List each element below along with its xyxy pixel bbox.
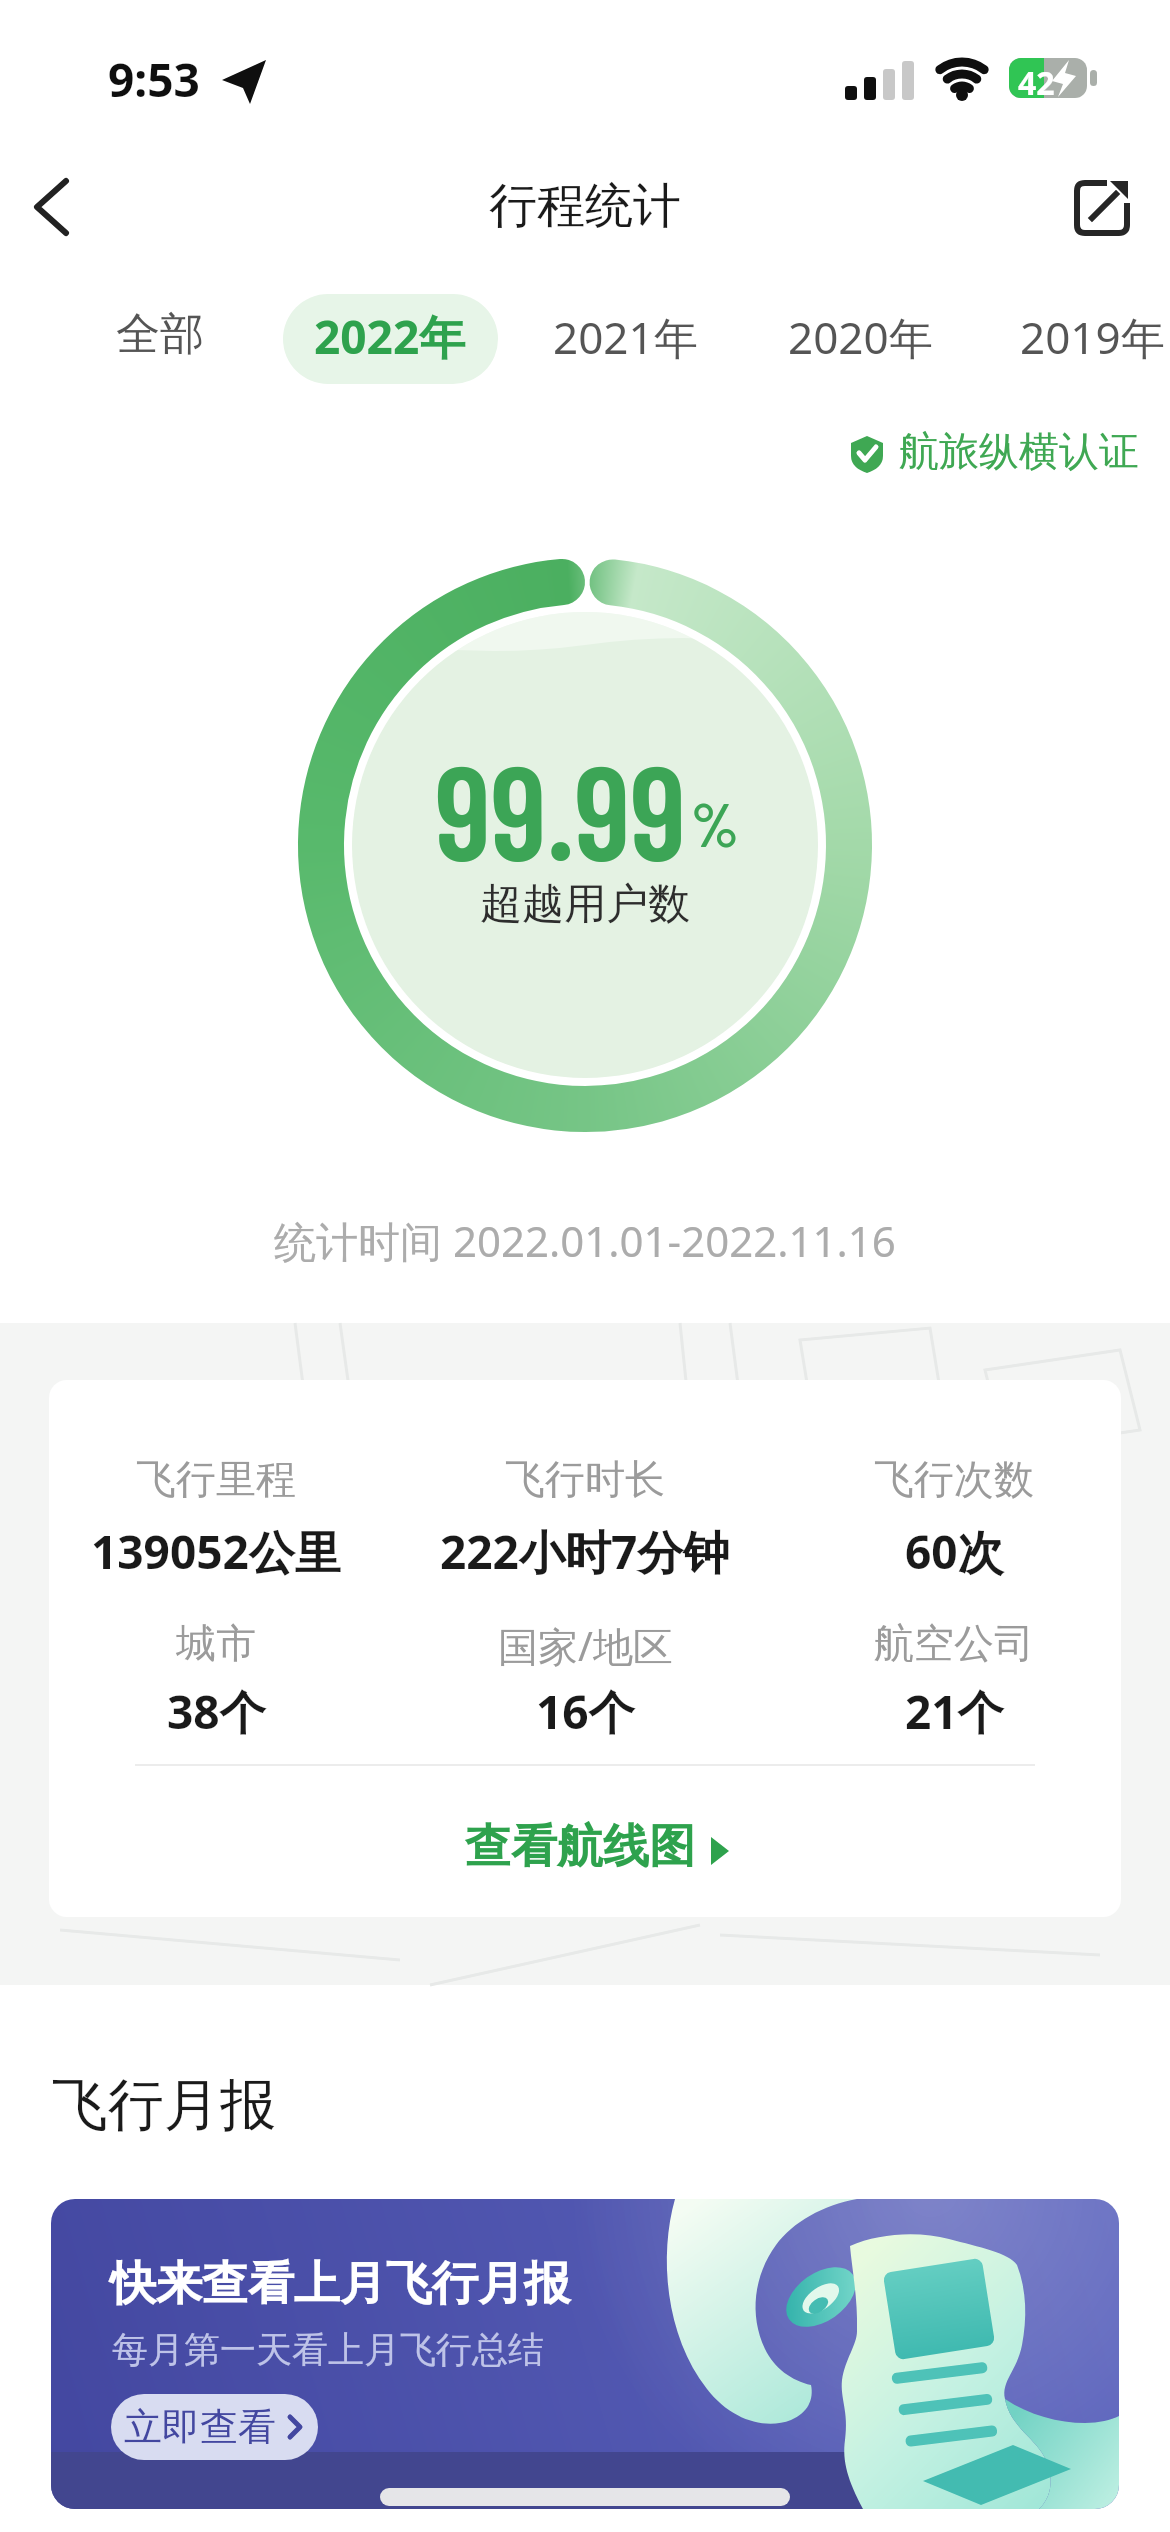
- staticText: 16个: [536, 1680, 635, 1743]
- staticText: 222小时7分钟: [440, 1520, 730, 1583]
- staticText: 每月第一天看上月飞行总结: [112, 2327, 544, 2372]
- staticText: 38个: [167, 1680, 266, 1743]
- button[interactable]: 快来查看上月飞行月报: [51, 2199, 1119, 2509]
- staticText: 统计时间 2022.01.01-2022.11.16: [274, 1212, 896, 1269]
- staticText: 快来查看上月飞行月报: [110, 2255, 570, 2313]
- staticText: 飞行次数: [874, 1454, 1034, 1504]
- staticText: 9:53: [108, 48, 200, 111]
- staticText: 航空公司: [874, 1618, 1034, 1668]
- staticText: %: [691, 785, 739, 859]
- button[interactable]: [10, 160, 110, 260]
- button[interactable]: [1054, 160, 1154, 260]
- staticText: 国家/地区: [498, 1618, 673, 1673]
- staticText: 2022年: [314, 305, 466, 368]
- button[interactable]: [840, 425, 1130, 485]
- button[interactable]: [550, 294, 710, 384]
- staticText: 21个: [905, 1680, 1004, 1743]
- button[interactable]: [400, 1810, 770, 1890]
- staticText: 2021年: [553, 307, 698, 367]
- staticText: 城市: [176, 1618, 256, 1668]
- staticText: 超越用户数: [480, 878, 690, 931]
- staticText: 行程统计: [489, 176, 681, 236]
- staticText: 飞行月报: [52, 2070, 276, 2141]
- staticText: 2019年: [1020, 307, 1165, 367]
- staticText: 立即查看: [124, 2403, 276, 2451]
- staticText: 查看航线图: [465, 1818, 695, 1876]
- staticText: 139052公里: [91, 1520, 341, 1583]
- staticText: 99.99: [435, 729, 687, 887]
- staticText: 42: [1018, 61, 1055, 105]
- staticText: 航旅纵横认证: [899, 426, 1139, 476]
- button[interactable]: [110, 294, 220, 384]
- staticText: 飞行里程: [136, 1454, 296, 1504]
- button[interactable]: [1020, 294, 1170, 384]
- button[interactable]: [283, 294, 498, 384]
- staticText: 2020年: [788, 307, 933, 367]
- staticText: 飞行时长: [505, 1454, 665, 1504]
- staticText: 全部: [116, 307, 204, 362]
- button[interactable]: [785, 294, 945, 384]
- button[interactable]: 立即查看: [111, 2394, 318, 2460]
- staticText: 60次: [905, 1520, 1004, 1583]
